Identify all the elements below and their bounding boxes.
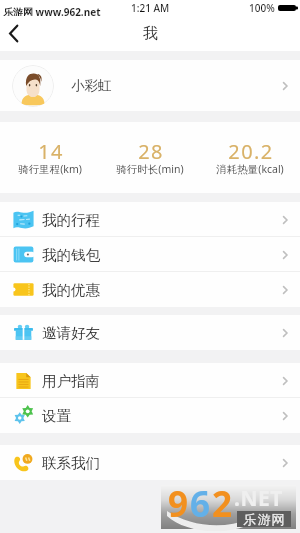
staticText: 设置 bbox=[42, 407, 71, 425]
staticText: 100% bbox=[249, 1, 275, 15]
button[interactable]: Back bbox=[0, 16, 26, 51]
staticText: 用户指南 bbox=[42, 372, 100, 390]
staticText: .NET bbox=[234, 484, 283, 513]
staticText: 消耗热量(kcal) bbox=[216, 162, 284, 176]
staticText: 小彩虹 bbox=[71, 77, 112, 94]
button[interactable]: 我的钱包 bbox=[0, 237, 300, 272]
staticText: 乐游网 bbox=[243, 511, 285, 527]
staticText: 联系我们 bbox=[42, 454, 100, 472]
staticText: 2 bbox=[212, 480, 233, 524]
staticText: 我 bbox=[143, 24, 158, 43]
staticText: 乐游网 www.962.net bbox=[3, 5, 101, 19]
staticText: 28 bbox=[138, 138, 164, 165]
staticText: 6 bbox=[190, 480, 211, 524]
staticText: 我的行程 bbox=[42, 211, 100, 229]
staticText: 1:21 AM bbox=[131, 1, 170, 15]
staticText: 9 bbox=[168, 480, 189, 524]
staticText: 邀请好友 bbox=[42, 324, 100, 342]
staticText: 20.2 bbox=[228, 138, 274, 165]
staticText: 14 bbox=[38, 138, 64, 165]
button[interactable]: 设置 bbox=[0, 398, 300, 433]
button[interactable]: 联系我们 bbox=[0, 445, 300, 480]
button[interactable]: 我的行程 bbox=[0, 202, 300, 237]
button[interactable]: 我的优惠 bbox=[0, 272, 300, 307]
staticText: 我的优惠 bbox=[42, 281, 100, 299]
button[interactable]: 小彩虹 bbox=[0, 60, 300, 111]
staticText: 骑行里程(km) bbox=[18, 162, 82, 176]
staticText: 骑行时长(min) bbox=[116, 162, 184, 176]
staticText: 我的钱包 bbox=[42, 246, 100, 264]
button[interactable]: 用户指南 bbox=[0, 363, 300, 398]
button[interactable]: 邀请好友 bbox=[0, 315, 300, 350]
